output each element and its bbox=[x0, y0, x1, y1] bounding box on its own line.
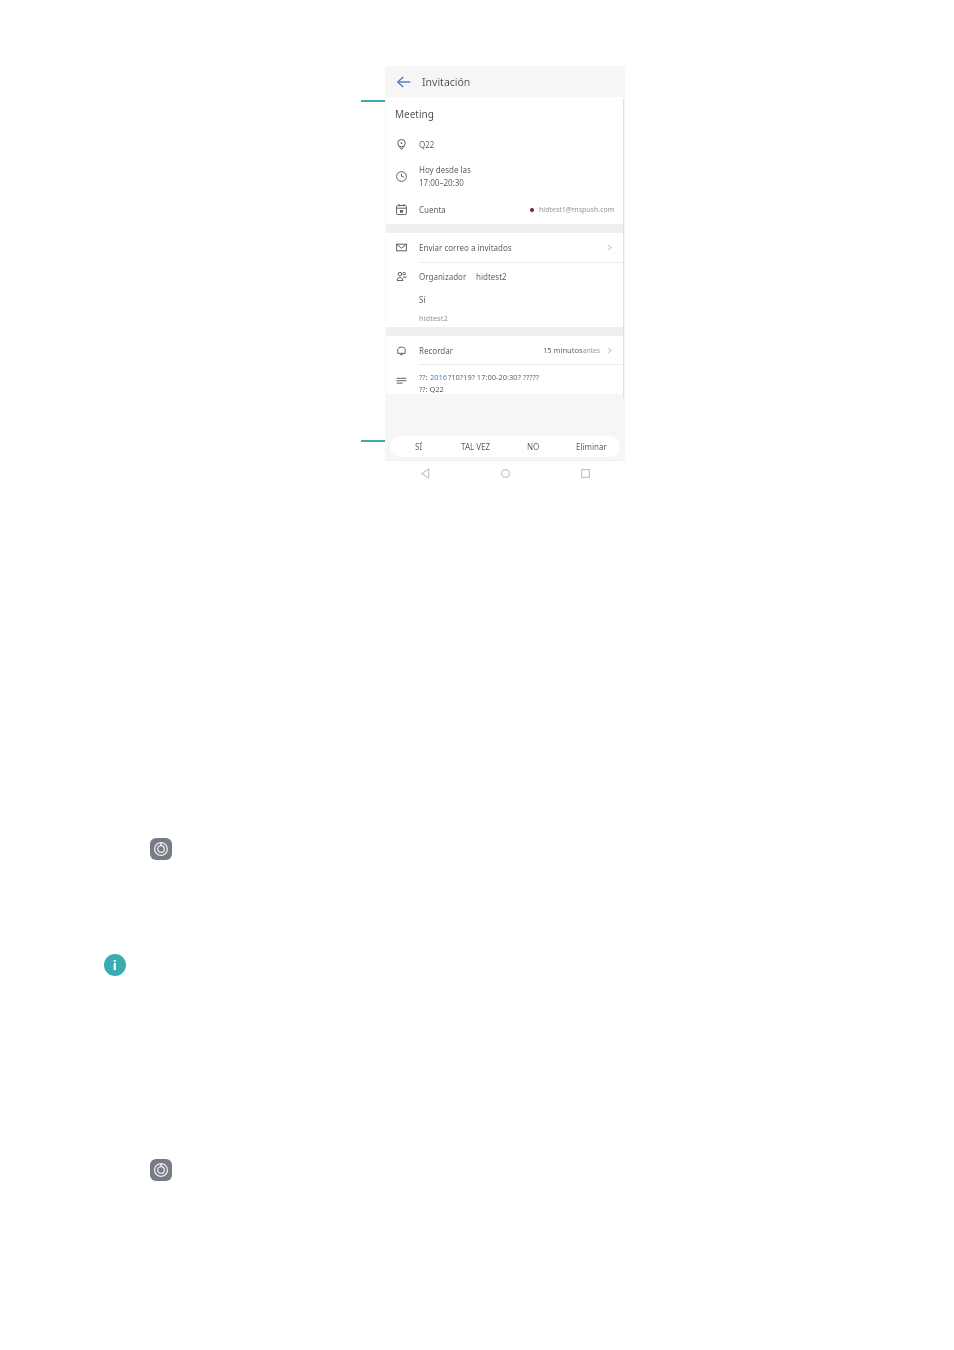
button[interactable]: Recents bbox=[545, 460, 625, 487]
staticText: 15 minutos bbox=[543, 345, 583, 355]
staticText: Organizador bbox=[419, 271, 467, 282]
button[interactable]: Q22 bbox=[386, 131, 623, 157]
button[interactable]: TAL VEZ bbox=[447, 436, 504, 457]
staticText: antes bbox=[583, 346, 600, 355]
button[interactable]: Information bbox=[104, 954, 126, 976]
button[interactable]: Cuenta bbox=[386, 195, 623, 224]
button[interactable]: Eliminar bbox=[562, 436, 620, 457]
staticText: hidtest1@mspush.com bbox=[539, 205, 615, 215]
staticText: Q22 bbox=[419, 139, 435, 150]
staticText: Recordar bbox=[419, 345, 454, 356]
button[interactable]: Back bbox=[385, 460, 465, 487]
button[interactable]: Hoy desde las bbox=[386, 157, 623, 195]
staticText: Hoy desde las bbox=[419, 164, 471, 175]
staticText: SÍ bbox=[415, 441, 423, 452]
staticText: ??: Q22 bbox=[419, 384, 444, 394]
staticText: Cuenta bbox=[419, 204, 446, 215]
button[interactable]: SÍ bbox=[390, 436, 447, 457]
staticText: hidtest2 bbox=[419, 313, 448, 323]
staticText: ??: bbox=[419, 372, 430, 382]
button[interactable]: Recordar bbox=[386, 336, 623, 364]
staticText: hidtest2 bbox=[476, 271, 507, 282]
button[interactable]: Back bbox=[391, 69, 417, 95]
staticText: Eliminar bbox=[576, 441, 607, 452]
staticText: Invitación bbox=[422, 75, 471, 89]
button[interactable]: Enviar correo a invitados bbox=[386, 233, 623, 262]
staticText: ?10?19? 17:00-20:30? ????? bbox=[448, 372, 540, 382]
staticText: 2016 bbox=[430, 372, 448, 382]
staticText: i bbox=[113, 957, 117, 973]
button[interactable]: Organizador bbox=[386, 263, 623, 327]
button[interactable]: App icon bbox=[150, 838, 172, 860]
button[interactable]: App icon bbox=[150, 1159, 172, 1181]
staticText: 17:00–20:30 bbox=[419, 177, 464, 188]
button[interactable]: NO bbox=[504, 436, 562, 457]
staticText: Meeting bbox=[395, 107, 434, 121]
staticText: Sí bbox=[419, 294, 426, 305]
staticText: TAL VEZ bbox=[461, 441, 491, 452]
button[interactable]: Home bbox=[465, 460, 545, 487]
staticText: NO bbox=[527, 441, 540, 452]
staticText: Enviar correo a invitados bbox=[419, 242, 512, 253]
